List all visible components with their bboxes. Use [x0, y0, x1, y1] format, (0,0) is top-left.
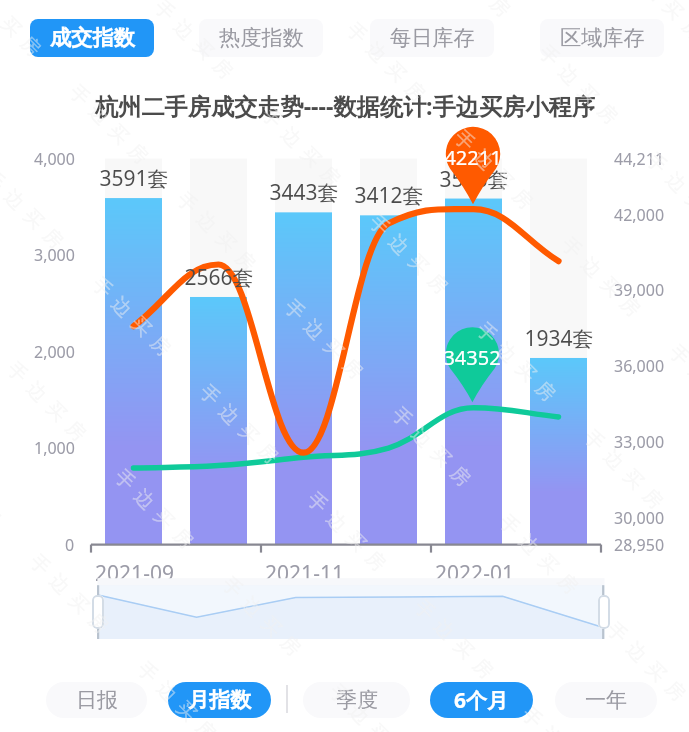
- staticText: 月指数: [188, 687, 251, 713]
- staticText: 手边买房: [254, 100, 348, 195]
- button[interactable]: 季度: [303, 682, 410, 718]
- staticText: 热度指数: [219, 25, 304, 52]
- staticText: 手边买房: [469, 315, 563, 409]
- staticText: 0: [65, 534, 75, 556]
- staticText: 2021-11: [265, 559, 344, 588]
- staticText: 手边买房: [0, 0, 49, 64]
- staticText: 手边买房: [299, 484, 394, 579]
- staticText: 手边买房: [661, 337, 689, 432]
- button[interactable]: Range handle: [598, 595, 610, 629]
- staticText: 33,000: [614, 431, 665, 453]
- staticText: 1934套: [524, 324, 594, 353]
- staticText: 一年: [585, 687, 627, 713]
- staticText: 手边买房: [616, 0, 689, 47]
- button[interactable]: Range handle: [92, 595, 104, 629]
- staticText: 手边买房: [276, 292, 371, 387]
- staticText: 手边买房: [169, 185, 264, 279]
- staticText: 手边买房: [406, 592, 501, 687]
- staticText: 3591套: [99, 164, 169, 193]
- staticText: 手边买房: [384, 400, 478, 494]
- staticText: 4,000: [34, 148, 75, 170]
- staticText: 2021-09: [95, 559, 174, 588]
- staticText: 34352: [443, 344, 501, 371]
- button[interactable]: 区域库存: [540, 19, 664, 57]
- staticText: 区域库存: [560, 25, 645, 52]
- staticText: 手边买房: [0, 354, 94, 449]
- staticText: 成交指数: [50, 25, 135, 52]
- staticText: 手边买房: [214, 569, 309, 664]
- staticText: 手边买房: [531, 37, 626, 132]
- staticText: 杭州二手房成交走势----数据统计:手边买房小程序: [95, 90, 595, 122]
- staticText: 3586套: [439, 165, 509, 194]
- staticText: 手边买房: [22, 547, 116, 641]
- staticText: 39,000: [614, 279, 665, 301]
- staticText: 6个月: [454, 686, 509, 715]
- staticText: 手边买房: [638, 145, 689, 240]
- staticText: 42,000: [614, 204, 665, 226]
- staticText: 手边买房: [514, 699, 609, 732]
- staticText: 手边买房: [491, 507, 586, 602]
- button[interactable]: 6个月: [430, 682, 533, 718]
- staticText: 手边买房: [553, 230, 648, 325]
- staticText: 手边买房: [599, 614, 689, 709]
- staticText: 手边买房: [107, 462, 201, 557]
- staticText: 手边买房: [61, 77, 156, 172]
- staticText: 手边买房: [191, 377, 286, 472]
- staticText: 手边买房: [361, 207, 456, 302]
- staticText: 手边买房: [321, 677, 416, 732]
- button[interactable]: 月指数: [168, 682, 271, 718]
- staticText: 每日库存: [390, 25, 475, 52]
- staticText: 手边买房: [129, 654, 224, 732]
- staticText: 2022-01: [435, 559, 514, 588]
- staticText: 36,000: [614, 355, 665, 377]
- staticText: 日报: [76, 687, 118, 713]
- staticText: 手边买房: [446, 122, 541, 217]
- staticText: 手边买房: [146, 0, 241, 87]
- button[interactable]: 日报: [46, 682, 147, 718]
- staticText: 手边买房: [0, 162, 71, 257]
- button[interactable]: 每日库存: [370, 19, 494, 57]
- button[interactable]: 成交指数: [30, 19, 154, 57]
- staticText: 42211: [444, 144, 502, 171]
- staticText: 3443套: [269, 178, 339, 207]
- staticText: 季度: [336, 687, 378, 713]
- staticText: 手边买房: [84, 269, 179, 364]
- staticText: 2,000: [34, 341, 75, 363]
- staticText: 44,211: [614, 148, 665, 170]
- staticText: 3412套: [354, 181, 424, 210]
- staticText: 手边买房: [338, 15, 433, 110]
- button[interactable]: 热度指数: [199, 19, 323, 57]
- staticText: 30,000: [614, 507, 665, 529]
- staticText: 3,000: [34, 244, 75, 266]
- staticText: 2566套: [184, 263, 254, 292]
- staticText: 28,950: [614, 534, 665, 556]
- button[interactable]: 一年: [555, 682, 657, 718]
- staticText: 1,000: [34, 437, 75, 459]
- staticText: 手边买房: [576, 422, 671, 517]
